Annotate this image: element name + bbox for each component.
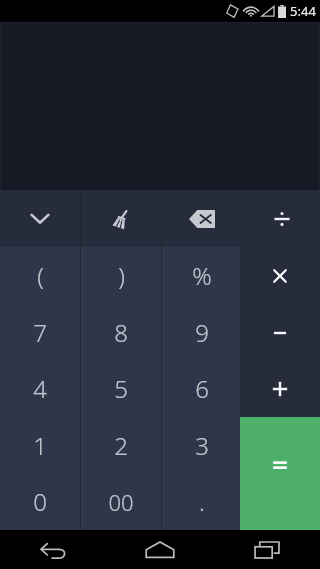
button[interactable]: Divide xyxy=(243,190,320,247)
button[interactable]: 2 xyxy=(81,417,161,474)
button[interactable]: Equals xyxy=(240,417,320,530)
button[interactable]: Backspace xyxy=(162,190,242,247)
staticText: 6 xyxy=(195,372,209,405)
staticText: 4 xyxy=(33,372,47,405)
staticText: 5:44 xyxy=(290,2,316,20)
button[interactable]: Add xyxy=(240,360,320,417)
button[interactable]: Subtract xyxy=(240,304,320,361)
button[interactable]: 00 xyxy=(81,473,161,530)
button[interactable]: 9 xyxy=(162,304,242,361)
button[interactable]: 4 xyxy=(0,360,80,417)
staticText: 2 xyxy=(114,429,128,462)
button[interactable]: 6 xyxy=(162,360,242,417)
staticText: 3 xyxy=(195,429,209,462)
button[interactable]: Recent apps xyxy=(213,530,320,569)
button[interactable]: % xyxy=(162,247,242,304)
staticText: ) xyxy=(118,259,125,292)
button[interactable]: 7 xyxy=(0,304,80,361)
button[interactable]: 8 xyxy=(81,304,161,361)
staticText: 1 xyxy=(33,429,47,462)
button[interactable]: ) xyxy=(81,247,161,304)
button[interactable]: Clear all xyxy=(81,190,161,247)
staticText: 5 xyxy=(114,372,128,405)
staticText: 7 xyxy=(33,316,47,349)
button[interactable]: ( xyxy=(0,247,80,304)
button[interactable]: Back xyxy=(0,530,106,569)
staticText: . xyxy=(199,485,205,518)
staticText: 0 xyxy=(33,485,47,518)
button[interactable]: Home xyxy=(106,530,213,569)
button[interactable]: 0 xyxy=(0,473,80,530)
staticText: 8 xyxy=(114,316,128,349)
button[interactable]: . xyxy=(162,473,242,530)
button[interactable]: 3 xyxy=(162,417,242,474)
button[interactable]: 5 xyxy=(81,360,161,417)
staticText: 9 xyxy=(195,316,209,349)
button[interactable]: Collapse xyxy=(0,190,80,247)
staticText: % xyxy=(192,259,212,292)
button[interactable]: Multiply xyxy=(240,247,320,304)
staticText: ( xyxy=(37,259,44,292)
staticText: 00 xyxy=(108,487,134,517)
button[interactable]: 1 xyxy=(0,417,80,474)
